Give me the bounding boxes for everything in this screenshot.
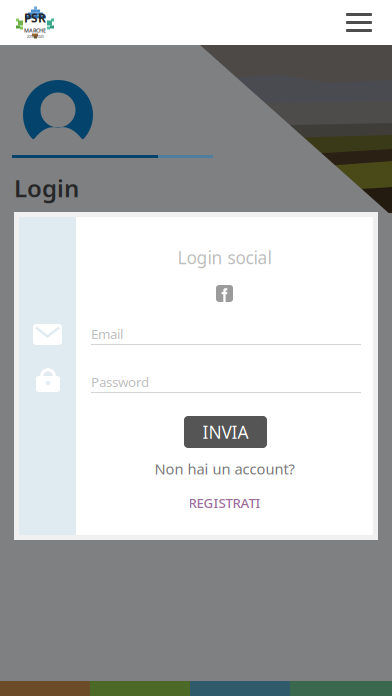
staticText: Password xyxy=(91,373,149,391)
button[interactable]: INVIA xyxy=(184,416,267,448)
staticText: Login xyxy=(14,172,79,204)
staticText: 2014-2020 xyxy=(26,34,43,39)
staticText: PSR xyxy=(24,10,46,26)
staticText: Email xyxy=(91,325,123,343)
button[interactable]: REGISTRATI xyxy=(188,494,260,512)
staticText: INVIA xyxy=(202,420,248,443)
staticText: REGISTRATI xyxy=(188,494,260,512)
button[interactable]: Menu xyxy=(337,0,381,44)
staticText: MARCHE xyxy=(24,27,46,34)
button[interactable]: Login with Facebook xyxy=(216,285,233,302)
staticText: Login social xyxy=(177,246,271,269)
staticText: Non hai un account? xyxy=(154,459,294,478)
